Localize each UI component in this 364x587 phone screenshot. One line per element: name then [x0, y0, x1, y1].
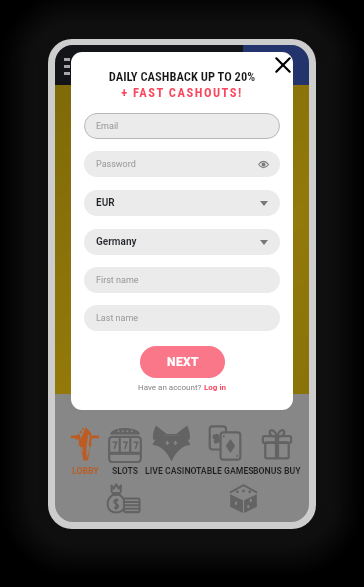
staticText: TABLE GAMES — [196, 466, 254, 476]
staticText: First name — [96, 275, 139, 286]
staticText: DAILY CASHBACK UP TO 20% — [71, 69, 293, 84]
button[interactable]: NEXT — [140, 346, 225, 378]
staticText: Email — [96, 121, 119, 132]
staticText: LIVE CASINO — [145, 466, 197, 476]
button[interactable]: Log in — [204, 383, 227, 392]
button[interactable]: Last name — [84, 305, 280, 331]
button[interactable]: First name — [84, 267, 280, 293]
button[interactable]: Email — [84, 113, 280, 139]
staticText: SLOTS — [112, 466, 139, 476]
button[interactable]: Cashier — [103, 481, 141, 515]
staticText: Password — [96, 159, 136, 170]
staticText: Have an account? — [138, 383, 204, 392]
button[interactable]: EUR — [84, 190, 280, 216]
staticText: Germany — [96, 236, 137, 248]
staticText: Log in — [204, 383, 227, 392]
button[interactable] — [249, 423, 305, 479]
button[interactable] — [97, 423, 153, 479]
button[interactable] — [143, 423, 199, 479]
staticText: NEXT — [167, 355, 199, 369]
button[interactable]: Password — [84, 151, 280, 177]
button[interactable]: Germany — [84, 229, 280, 255]
button[interactable] — [197, 423, 253, 479]
button[interactable]: Close — [270, 52, 293, 78]
staticText: EUR — [96, 197, 115, 209]
button[interactable] — [57, 423, 113, 479]
staticText: BONUS BUY — [253, 466, 301, 476]
staticText: + FAST CASHOUTS! — [71, 85, 293, 100]
staticText: LOBBY — [72, 466, 99, 476]
staticText: Last name — [96, 313, 139, 324]
button[interactable]: Menu — [64, 58, 70, 75]
button[interactable]: Games — [225, 481, 261, 515]
